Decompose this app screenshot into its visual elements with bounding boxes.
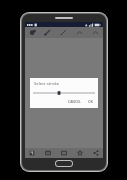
button[interactable]: Brush: [27, 27, 38, 38]
staticText: Select stroke: [34, 81, 60, 87]
staticText: CANCEL: [68, 99, 81, 104]
button[interactable]: Redo: [90, 27, 101, 38]
button[interactable]: Stroke width slider: [33, 90, 95, 96]
staticText: OK: [88, 99, 93, 104]
button[interactable]: OK: [87, 98, 94, 105]
button[interactable]: Share: [91, 148, 101, 158]
button[interactable]: Pen: [58, 27, 69, 38]
button[interactable]: New: [59, 148, 69, 158]
button[interactable]: Save: [27, 148, 37, 158]
button[interactable]: Undo: [74, 27, 85, 38]
button[interactable]: Favorite: [75, 148, 85, 158]
button[interactable]: CANCEL: [67, 98, 82, 105]
button[interactable]: Gallery: [43, 148, 53, 158]
button[interactable]: Pencil: [42, 27, 53, 38]
